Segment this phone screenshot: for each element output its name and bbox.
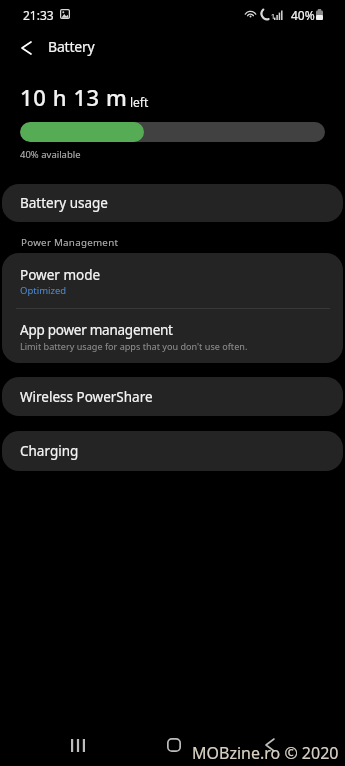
button[interactable]: App power management [2, 309, 343, 363]
button[interactable]: Home [153, 724, 195, 766]
staticText: 40% [291, 7, 315, 23]
button[interactable]: Charging [2, 431, 343, 471]
staticText: Battery usage [20, 194, 108, 212]
button[interactable]: Back [249, 724, 291, 766]
staticText: left [130, 94, 149, 110]
staticText: Optimized [20, 284, 67, 297]
staticText: Power Management [21, 236, 119, 249]
staticText: Battery [48, 37, 95, 56]
button[interactable]: Back [10, 32, 42, 64]
staticText: Charging [20, 442, 79, 460]
staticText: Wireless PowerShare [20, 388, 153, 406]
button[interactable]: Recent apps [57, 724, 99, 766]
staticText: 21:33 [23, 7, 54, 23]
staticText: 10 h 13 m [20, 82, 128, 112]
button[interactable]: Battery usage [2, 184, 343, 222]
staticText: MOBzine.ro © 2020 [192, 742, 339, 764]
staticText: 40% available [20, 148, 81, 161]
button[interactable]: Power mode [2, 253, 343, 308]
staticText: 1 [271, 12, 276, 22]
button[interactable]: Wireless PowerShare [2, 377, 343, 416]
staticText: App power management [20, 321, 173, 339]
staticText: Limit battery usage for apps that you do… [20, 340, 248, 352]
staticText: Power mode [20, 266, 101, 284]
